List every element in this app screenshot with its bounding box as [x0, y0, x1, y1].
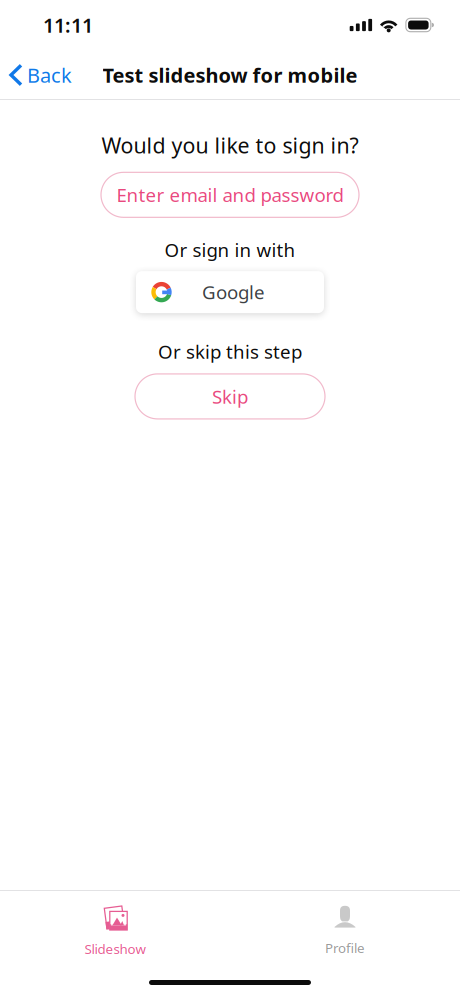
staticText: Skip: [212, 384, 248, 409]
staticText: 11:11: [43, 12, 93, 38]
staticText: Would you like to sign in?: [101, 131, 358, 159]
staticText: Or skip this step: [158, 339, 302, 364]
button[interactable]: Slideshow: [0, 891, 230, 966]
staticText: Test slideshow for mobile: [102, 62, 357, 88]
staticText: Back: [27, 62, 72, 88]
button[interactable]: Back: [0, 50, 82, 100]
staticText: Enter email and password: [116, 182, 343, 207]
button[interactable]: Google: [136, 271, 324, 313]
button[interactable]: Profile: [230, 891, 460, 966]
button[interactable]: Skip: [135, 374, 325, 419]
button[interactable]: Enter email and password: [101, 172, 359, 217]
staticText: Or sign in with: [164, 237, 295, 262]
staticText: Slideshow: [84, 940, 145, 958]
staticText: Profile: [325, 939, 365, 957]
staticText: Google: [202, 280, 265, 304]
